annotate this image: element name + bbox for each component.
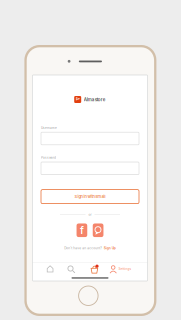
staticText: or <box>88 213 91 216</box>
staticText: f <box>80 224 84 236</box>
button[interactable]: Search <box>65 263 77 275</box>
staticText: Settings <box>118 267 131 271</box>
staticText: Don't have an account? <box>64 246 102 250</box>
button[interactable]: Settings <box>108 263 134 275</box>
button[interactable]: Home <box>44 263 56 275</box>
staticText: Username <box>41 126 57 130</box>
staticText: Almastore <box>84 97 106 102</box>
button[interactable]: Sign in with Messenger <box>93 223 103 237</box>
button[interactable]: Sign in with Email <box>41 190 139 204</box>
staticText: Password <box>41 156 56 159</box>
button[interactable]: Don't have an account? <box>64 246 116 250</box>
button[interactable]: Cart <box>87 262 100 275</box>
staticText: Sign Up <box>104 246 116 250</box>
staticText: Sign in with Email <box>74 194 105 199</box>
button[interactable]: Sign in with Facebook <box>76 223 87 237</box>
